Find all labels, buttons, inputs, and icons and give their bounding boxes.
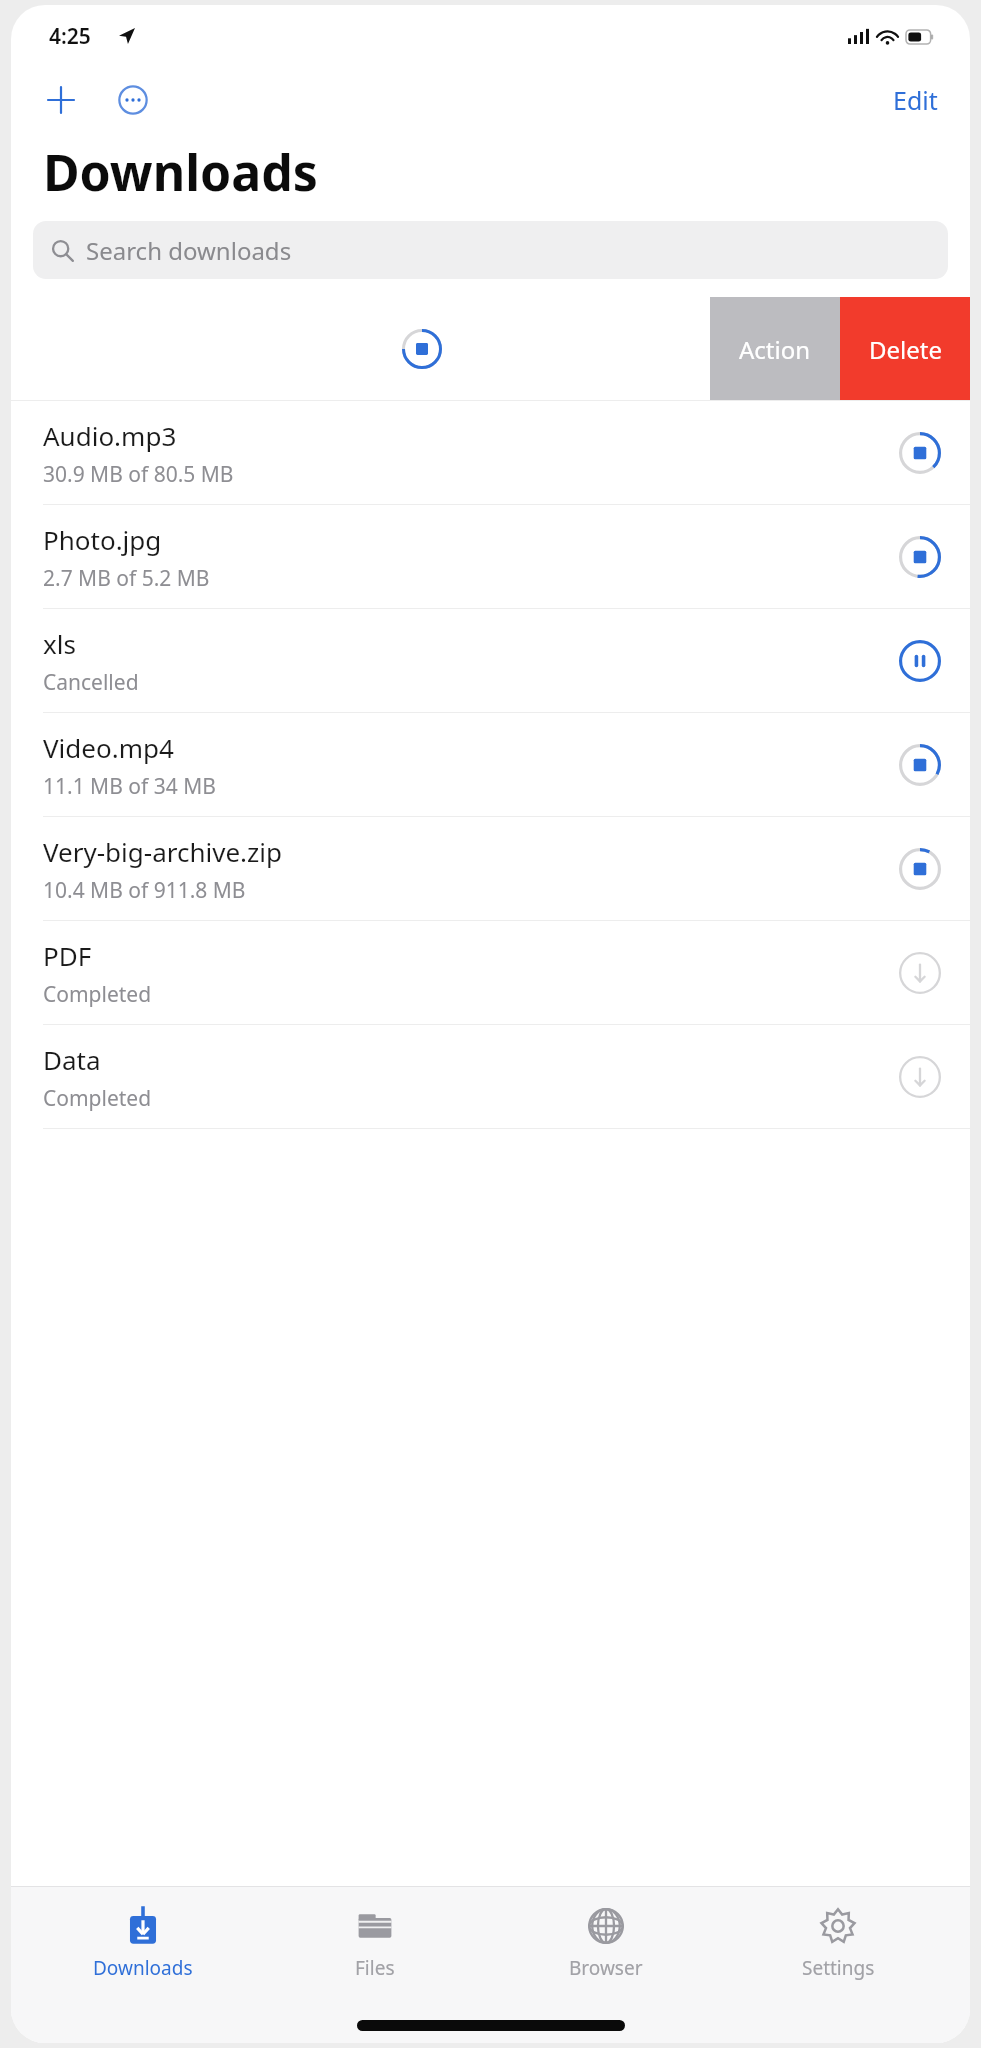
staticText: Completed: [43, 1084, 152, 1113]
button[interactable]: Files: [275, 1887, 475, 1999]
button[interactable]: PDF: [11, 921, 970, 1025]
staticText: Edit: [893, 83, 938, 117]
staticText: Video.mp4: [43, 730, 174, 765]
staticText: Downloads: [93, 1955, 193, 1981]
button[interactable]: Video.mp4: [11, 713, 970, 817]
staticText: 30.9 MB of 80.5 MB: [43, 460, 234, 489]
button[interactable]: Downloads: [43, 1887, 243, 1999]
button[interactable]: Stop download: [892, 737, 948, 793]
button[interactable]: Delete: [840, 297, 970, 401]
button[interactable]: Photo.jpg: [11, 505, 970, 609]
staticText: Cancelled: [43, 668, 139, 697]
button[interactable]: Add download: [37, 76, 85, 124]
button[interactable]: Data: [11, 1025, 970, 1129]
staticText: Browser: [569, 1955, 643, 1981]
button[interactable]: Settings: [738, 1887, 938, 1999]
button[interactable]: Action: [710, 297, 840, 401]
button[interactable]: Stop download: [892, 425, 948, 481]
staticText: PDF: [43, 938, 92, 973]
button[interactable]: Resume download: [892, 633, 948, 689]
button[interactable]: Download again: [892, 1049, 948, 1105]
button[interactable]: Very-big-archive.zip: [11, 817, 970, 921]
staticText: Audio.mp3: [43, 418, 177, 453]
button[interactable]: Search downloads: [33, 221, 948, 279]
staticText: xls: [43, 626, 76, 661]
staticText: Data: [43, 1042, 101, 1077]
staticText: Very-big-archive.zip: [43, 834, 282, 869]
button[interactable]: Stop download: [892, 529, 948, 585]
staticText: Downloads: [43, 138, 318, 206]
staticText: Photo.jpg: [43, 522, 162, 557]
staticText: Settings: [802, 1955, 875, 1981]
staticText: Files: [355, 1955, 395, 1981]
staticText: Search downloads: [86, 234, 292, 267]
button[interactable]: Stop download: [399, 326, 445, 372]
button[interactable]: More options: [109, 76, 157, 124]
button[interactable]: Browser: [506, 1887, 706, 1999]
staticText: Completed: [43, 980, 152, 1009]
button[interactable]: Stop download: [892, 841, 948, 897]
staticText: 2.7 MB of 5.2 MB: [43, 564, 210, 593]
button[interactable]: Edit: [883, 75, 948, 125]
button[interactable]: Audio.mp3: [11, 401, 970, 505]
button[interactable]: xls: [11, 609, 970, 713]
button[interactable]: Download again: [892, 945, 948, 1001]
staticText: 11.1 MB of 34 MB: [43, 772, 216, 801]
staticText: 10.4 MB of 911.8 MB: [43, 876, 246, 905]
staticText: Action: [739, 333, 811, 366]
staticText: Delete: [869, 333, 942, 366]
staticText: 4:25: [49, 22, 91, 51]
